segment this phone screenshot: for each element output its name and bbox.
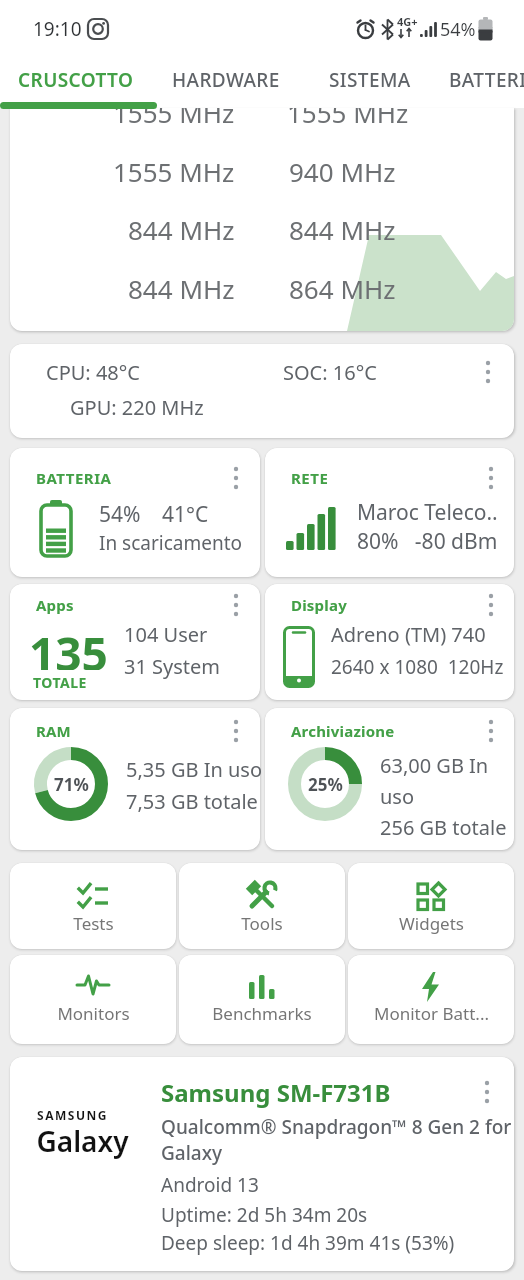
staticText: 7,53 GB totale	[126, 788, 258, 815]
staticText: 41°C	[162, 500, 209, 529]
button[interactable]	[10, 863, 176, 949]
staticText: 31 System	[124, 653, 221, 680]
button[interactable]	[481, 717, 501, 745]
staticText: 1555 MHz	[287, 108, 409, 130]
staticText: 844 MHz	[289, 212, 396, 247]
staticText: Maroc Teleco..	[357, 498, 498, 527]
staticText: uso	[380, 783, 415, 810]
staticText: 864 MHz	[289, 271, 396, 306]
staticText: Display	[291, 595, 347, 615]
staticText: 2640 x 1080 120Hz	[331, 654, 504, 680]
staticText: 4G+	[397, 14, 418, 29]
button[interactable]	[481, 464, 501, 492]
button[interactable]	[477, 1078, 497, 1106]
staticText: Benchmarks	[212, 1002, 312, 1025]
staticText: Android 13	[161, 1172, 259, 1198]
button[interactable]	[226, 717, 246, 745]
button[interactable]	[440, 56, 524, 108]
staticText: In scaricamento	[99, 530, 243, 556]
button[interactable]	[478, 358, 498, 386]
button[interactable]	[265, 448, 514, 577]
staticText: SOC: 16°C	[283, 359, 377, 386]
staticText: Widgets	[399, 912, 464, 935]
staticText: Galaxy	[161, 1140, 223, 1166]
button[interactable]	[10, 448, 260, 577]
button[interactable]	[179, 863, 345, 949]
staticText: 256 GB totale	[380, 814, 507, 841]
staticText: 80% -80 dBm	[357, 527, 498, 556]
staticText: CPU: 48°C	[46, 359, 140, 386]
staticText: GPU: 220 MHz	[70, 394, 204, 421]
staticText: 1555 MHz	[113, 108, 235, 130]
staticText: Uptime: 2d 5h 34m 20s	[161, 1202, 368, 1228]
staticText: Tools	[241, 912, 283, 935]
staticText: Adreno (TM) 740	[331, 621, 486, 648]
staticText: Monitor Batt...	[374, 1002, 489, 1025]
button[interactable]	[10, 955, 176, 1044]
staticText: SISTEMA	[329, 67, 411, 93]
staticText: BATTERIA	[36, 468, 112, 488]
button[interactable]	[265, 584, 514, 700]
button[interactable]	[10, 584, 260, 700]
button[interactable]	[0, 56, 160, 108]
staticText: 940 MHz	[289, 154, 396, 189]
button[interactable]	[226, 591, 246, 619]
staticText: SAMSUNG	[37, 1107, 108, 1123]
staticText: Tests	[73, 912, 114, 935]
staticText: RAM	[36, 721, 71, 741]
button[interactable]	[179, 955, 345, 1044]
staticText: 25%	[308, 773, 343, 796]
staticText: Galaxy	[36, 1122, 129, 1160]
staticText: Samsung SM-F731B	[161, 1076, 391, 1109]
button[interactable]	[10, 344, 514, 438]
staticText: RETE	[291, 468, 329, 488]
staticText: 104 User	[124, 621, 208, 648]
button[interactable]	[10, 1057, 514, 1271]
staticText: 54%	[99, 500, 141, 529]
staticText: 71%	[54, 773, 89, 796]
staticText: 844 MHz	[128, 212, 235, 247]
staticText: Archiviazione	[291, 721, 395, 741]
button[interactable]	[348, 955, 514, 1044]
staticText: 135	[29, 622, 108, 670]
staticText: Apps	[36, 595, 74, 615]
button[interactable]: 1555 MHz	[10, 108, 514, 331]
staticText: CRUSCOTTO	[18, 67, 134, 93]
staticText: 1555 MHz	[113, 154, 235, 189]
button[interactable]	[315, 56, 435, 108]
staticText: Qualcomm® Snapdragon™ 8 Gen 2 for	[161, 1114, 512, 1140]
button[interactable]	[481, 591, 501, 619]
button[interactable]	[160, 56, 310, 108]
staticText: HARDWARE	[172, 67, 280, 93]
staticText: 54%	[440, 17, 476, 42]
button[interactable]	[348, 863, 514, 949]
staticText: 63,00 GB In	[380, 752, 489, 779]
button[interactable]	[10, 708, 260, 850]
button[interactable]	[226, 464, 246, 492]
staticText: 844 MHz	[128, 271, 235, 306]
staticText: TOTALE	[33, 673, 87, 692]
staticText: 5,35 GB In uso	[126, 756, 263, 783]
button[interactable]	[265, 708, 514, 850]
staticText: 19:10	[33, 16, 82, 42]
staticText: BATTERIA	[449, 67, 524, 93]
staticText: Monitors	[57, 1002, 130, 1025]
staticText: Deep sleep: 1d 4h 39m 41s (53%)	[161, 1230, 455, 1256]
